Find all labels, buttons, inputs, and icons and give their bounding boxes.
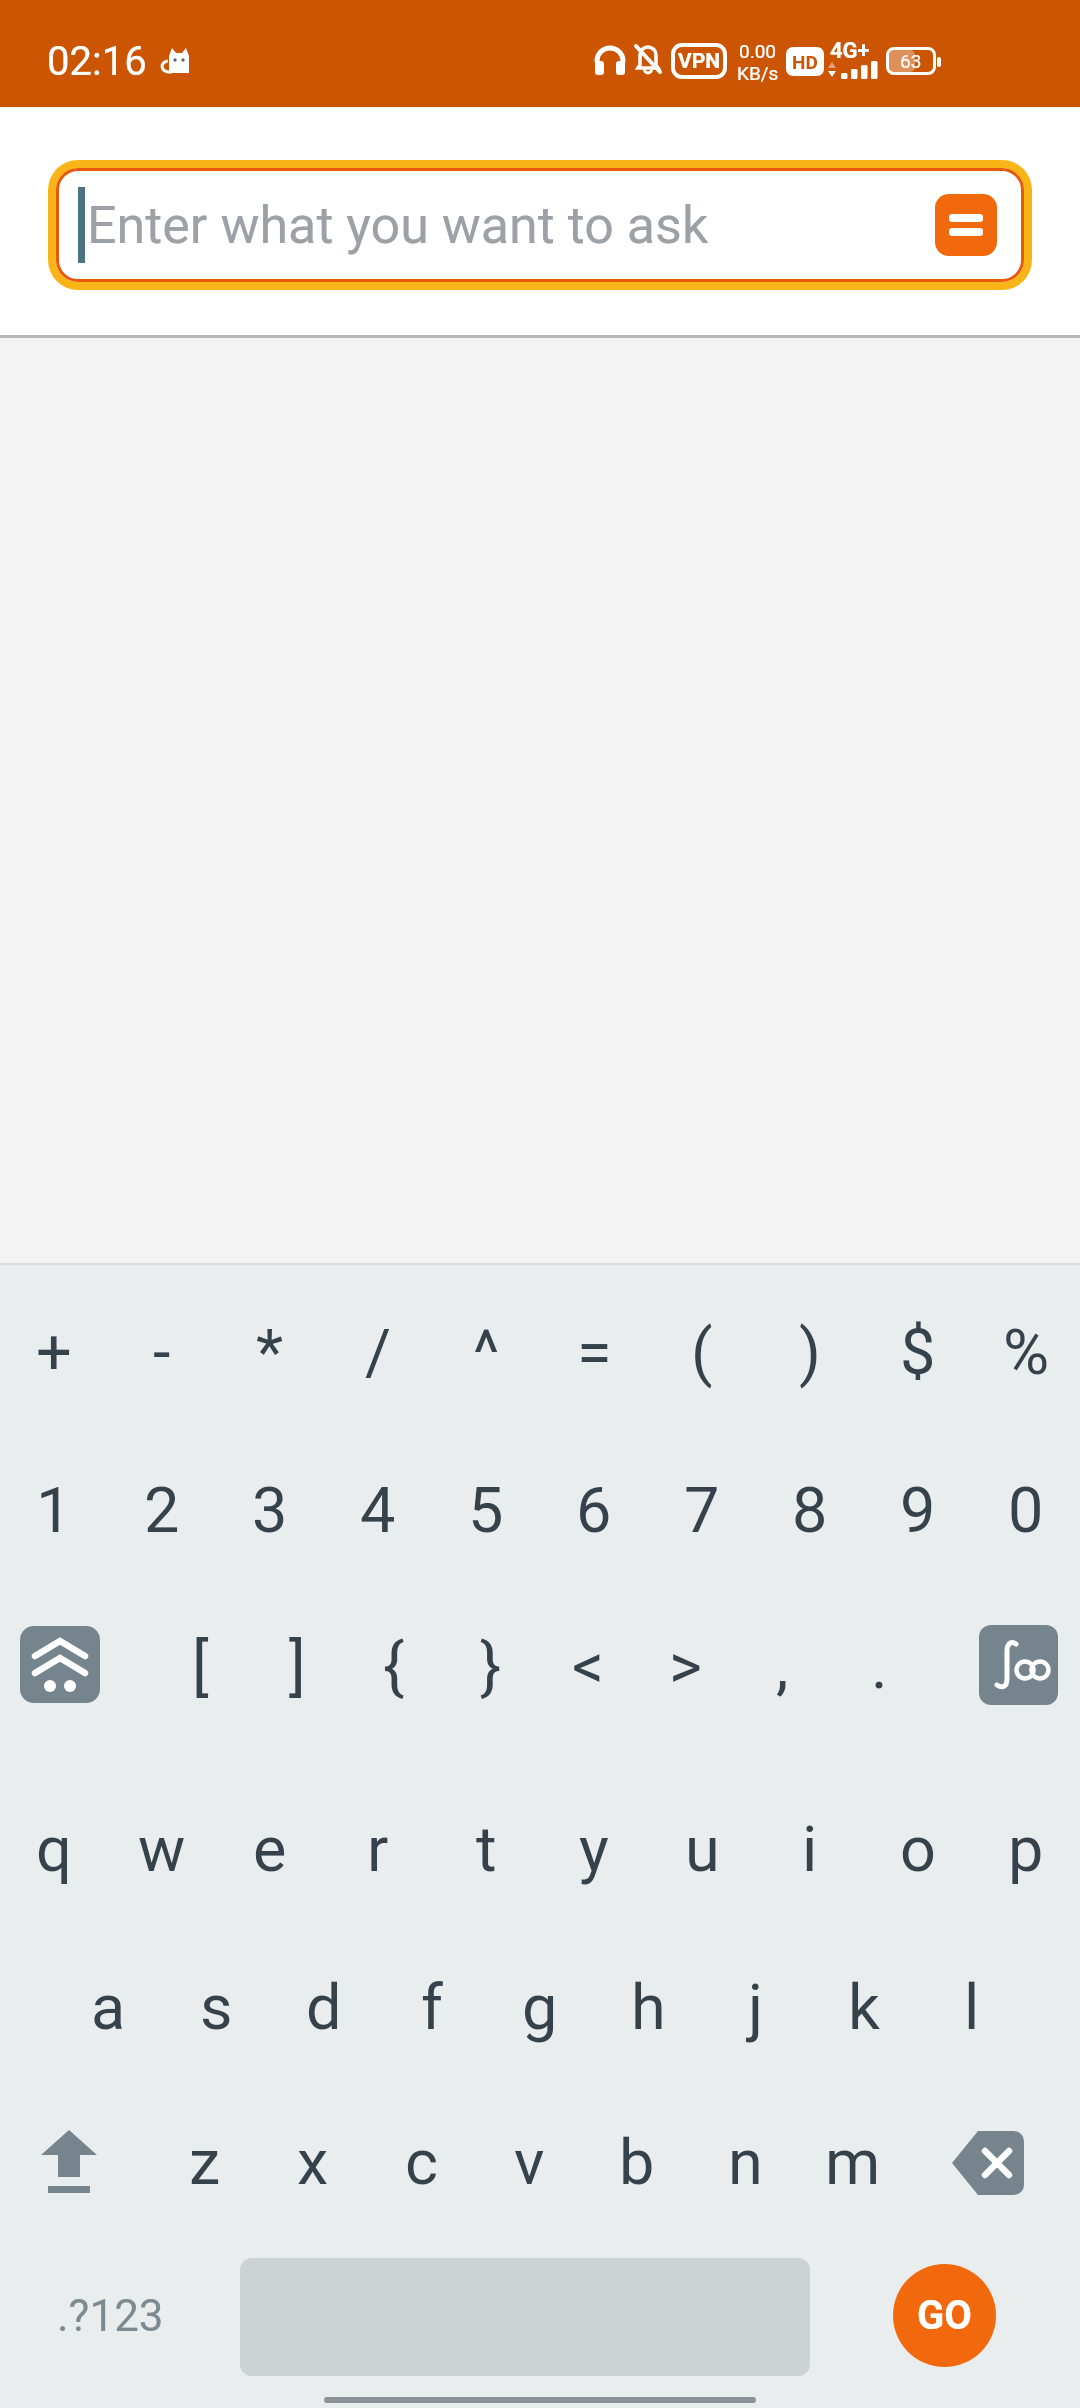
button[interactable]: n <box>693 2103 797 2223</box>
button[interactable]: * <box>218 1293 322 1413</box>
staticText: HD <box>792 51 818 73</box>
button[interactable]: f <box>380 1948 484 2068</box>
staticText: j <box>748 1971 764 2045</box>
staticText: k <box>848 1971 880 2045</box>
button[interactable]: 5 <box>434 1451 538 1571</box>
button[interactable]: a <box>56 1948 160 2068</box>
staticText: w <box>138 1813 186 1887</box>
staticText: 0 <box>1008 1474 1044 1548</box>
button[interactable]: x <box>261 2103 365 2223</box>
button[interactable]: 3 <box>218 1451 322 1571</box>
staticText: m <box>825 2126 881 2200</box>
staticText: < <box>572 1630 605 1704</box>
staticText: l <box>964 1971 980 2045</box>
button[interactable]: y <box>542 1790 646 1910</box>
staticText: t <box>476 1813 497 1887</box>
button[interactable]: j <box>704 1948 808 2068</box>
button[interactable]: l <box>920 1948 1024 2068</box>
staticText: VPN <box>678 49 721 74</box>
button[interactable]: 0 <box>974 1451 1078 1571</box>
button[interactable]: c <box>369 2103 473 2223</box>
button[interactable]: GO <box>893 2264 996 2367</box>
button[interactable]: e <box>218 1790 322 1910</box>
button[interactable]: . <box>834 1607 924 1727</box>
staticText: KB/s <box>737 62 779 84</box>
button[interactable]: 6 <box>542 1451 646 1571</box>
staticText: . <box>871 1630 888 1704</box>
button[interactable]: = <box>542 1293 646 1413</box>
button[interactable]: o <box>866 1790 970 1910</box>
button[interactable] <box>20 1626 100 1703</box>
staticText: ( <box>691 1316 713 1390</box>
button[interactable]: ) <box>758 1293 862 1413</box>
button[interactable]: p <box>974 1790 1078 1910</box>
button[interactable]: ^ <box>434 1293 538 1413</box>
button[interactable]: < <box>543 1607 633 1727</box>
staticText: * <box>256 1316 284 1390</box>
staticText: [ <box>192 1630 209 1704</box>
button[interactable] <box>935 194 997 256</box>
button[interactable]: Enter what you want to ask <box>56 168 1024 282</box>
button[interactable]: ] <box>252 1607 342 1727</box>
button[interactable]: $ <box>866 1293 970 1413</box>
button[interactable]: m <box>801 2103 905 2223</box>
staticText: y <box>579 1813 609 1887</box>
button[interactable]: t <box>434 1790 538 1910</box>
button[interactable]: s <box>164 1948 268 2068</box>
button[interactable]: [ <box>155 1607 245 1727</box>
button[interactable]: , <box>737 1607 827 1727</box>
staticText: > <box>669 1630 702 1704</box>
staticText: 7 <box>684 1474 720 1548</box>
button[interactable]: 4 <box>326 1451 430 1571</box>
staticText: / <box>365 1316 391 1390</box>
button[interactable]: .?123 <box>40 2256 180 2376</box>
staticText: n <box>728 2126 763 2200</box>
button[interactable]: { <box>349 1607 439 1727</box>
button[interactable]: b <box>585 2103 689 2223</box>
button[interactable]: g <box>488 1948 592 2068</box>
button[interactable] <box>34 2123 104 2203</box>
staticText: 9 <box>900 1474 936 1548</box>
button[interactable] <box>979 1625 1058 1705</box>
button[interactable]: } <box>446 1607 536 1727</box>
button[interactable]: k <box>812 1948 916 2068</box>
staticText: 02:16 <box>47 38 147 85</box>
button[interactable]: 9 <box>866 1451 970 1571</box>
staticText: ^ <box>473 1316 500 1390</box>
staticText: , <box>776 1630 789 1704</box>
staticText: } <box>480 1630 502 1704</box>
button[interactable]: d <box>272 1948 376 2068</box>
staticText: Enter what you want to ask <box>87 195 709 256</box>
button[interactable]: / <box>326 1293 430 1413</box>
button[interactable]: q <box>2 1790 106 1910</box>
button[interactable]: r <box>326 1790 430 1910</box>
button[interactable]: - <box>110 1293 214 1413</box>
button[interactable]: > <box>640 1607 730 1727</box>
staticText: 63 <box>900 50 922 72</box>
staticText: 6 <box>576 1474 612 1548</box>
staticText: v <box>514 2126 545 2200</box>
staticText: 0.00 <box>739 40 777 62</box>
button[interactable] <box>944 2125 1032 2201</box>
button[interactable]: u <box>650 1790 754 1910</box>
staticText: i <box>802 1813 818 1887</box>
staticText: 4 <box>360 1474 396 1548</box>
staticText: GO <box>917 2292 972 2339</box>
button[interactable]: ( <box>650 1293 754 1413</box>
button[interactable]: + <box>2 1293 106 1413</box>
button[interactable]: 8 <box>758 1451 862 1571</box>
staticText: u <box>685 1813 720 1887</box>
staticText: % <box>1003 1316 1050 1390</box>
button[interactable]: v <box>477 2103 581 2223</box>
button[interactable]: w <box>110 1790 214 1910</box>
button[interactable]: 2 <box>110 1451 214 1571</box>
button[interactable]: i <box>758 1790 862 1910</box>
button[interactable]: z <box>153 2103 257 2223</box>
staticText: ] <box>289 1630 306 1704</box>
button[interactable]: h <box>596 1948 700 2068</box>
staticText: = <box>577 1316 612 1390</box>
button[interactable]: 7 <box>650 1451 754 1571</box>
button[interactable]: 1 <box>2 1451 106 1571</box>
button[interactable]: % <box>974 1293 1078 1413</box>
